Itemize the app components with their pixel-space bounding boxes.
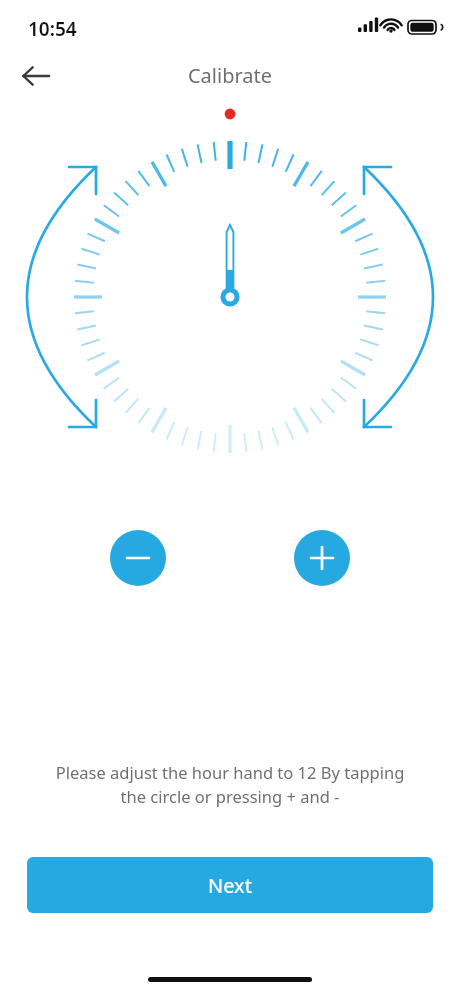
button[interactable]: Increase [294, 530, 350, 586]
staticText: Next [208, 872, 252, 899]
staticText: 10:54 [28, 16, 77, 42]
button[interactable]: Clock dial [0, 100, 460, 480]
button[interactable]: Decrease [110, 530, 166, 586]
button[interactable]: Back [10, 50, 62, 102]
staticText: Please adjust the hour hand to 12 By tap… [20, 761, 440, 808]
button[interactable]: Next [27, 857, 433, 913]
staticText: Calibrate [0, 62, 460, 89]
